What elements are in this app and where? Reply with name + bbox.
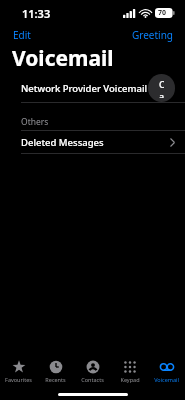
staticText: Recents xyxy=(45,376,66,383)
staticText: Network Provider Voicemail xyxy=(21,82,148,95)
staticText: Voicemail xyxy=(154,376,179,383)
button[interactable]: Contacts xyxy=(74,354,111,388)
staticText: 70 xyxy=(158,8,167,18)
staticText: 11:33 xyxy=(22,6,51,21)
staticText: Favourites xyxy=(5,376,32,383)
button[interactable]: Greeting xyxy=(121,26,185,44)
staticText: Others xyxy=(21,116,49,128)
staticText: Edit xyxy=(13,28,31,42)
button[interactable]: Network Provider Voicemail xyxy=(0,74,185,102)
button[interactable]: Call xyxy=(148,74,175,102)
button[interactable]: Recents xyxy=(37,354,74,388)
button[interactable]: Edit xyxy=(0,26,44,44)
button[interactable]: Keypad xyxy=(111,354,148,388)
staticText: Voicemail xyxy=(12,44,114,68)
button[interactable]: Voicemail xyxy=(148,354,185,388)
staticText: Contacts xyxy=(81,376,104,383)
staticText: Call xyxy=(159,78,164,98)
staticText: Keypad xyxy=(120,376,140,383)
staticText: Greeting xyxy=(132,28,174,42)
button[interactable]: Favourites xyxy=(0,354,37,388)
button[interactable]: Deleted Messages xyxy=(0,131,185,153)
staticText: Deleted Messages xyxy=(21,136,104,149)
